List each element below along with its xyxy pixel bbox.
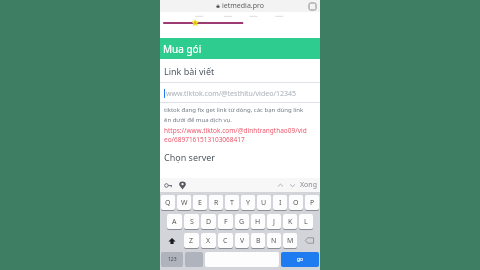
button[interactable]: A <box>167 214 182 229</box>
staticText: M <box>287 236 294 246</box>
staticText: W <box>181 198 188 208</box>
button[interactable]: F <box>218 214 233 229</box>
staticText: O <box>293 198 299 208</box>
staticText: S <box>190 217 194 227</box>
button[interactable]: H <box>251 214 265 229</box>
staticText: go <box>297 256 304 263</box>
button[interactable]: I <box>273 195 287 210</box>
button[interactable]: B <box>251 233 265 248</box>
staticText: ên dưới để mua dịch vụ. <box>164 116 232 124</box>
button[interactable]: Previous field <box>276 181 285 190</box>
button[interactable]: Next field <box>288 181 297 190</box>
staticText: Link bài viết <box>164 65 215 77</box>
staticText: tiktok đang fix get link từ dòng, các bạ… <box>164 106 317 114</box>
staticText: I <box>279 198 282 208</box>
staticText: https://www.tiktok.com/@dinhtrangthao09/… <box>164 126 307 135</box>
button[interactable]: P <box>305 195 319 210</box>
button[interactable]: S <box>184 214 199 229</box>
staticText: N <box>271 236 277 246</box>
staticText: 123 <box>168 256 177 263</box>
button[interactable]: Xong <box>300 180 317 190</box>
staticText: B <box>256 236 261 246</box>
button[interactable]: Shift <box>161 233 182 248</box>
button[interactable]: M <box>283 233 297 248</box>
staticText: F <box>224 217 228 227</box>
button[interactable]: go <box>281 252 319 267</box>
staticText: Z <box>189 236 194 246</box>
button[interactable]: D <box>201 214 216 229</box>
button[interactable]: Mua gói <box>160 38 320 59</box>
button[interactable]: J <box>267 214 281 229</box>
staticText: P <box>310 198 315 208</box>
button[interactable]: E <box>193 195 207 210</box>
staticText: Y <box>246 198 250 208</box>
button[interactable]: T <box>225 195 239 210</box>
button[interactable]: L <box>299 214 313 229</box>
staticText: T <box>230 198 234 208</box>
staticText: Q <box>165 198 171 208</box>
button[interactable]: V <box>235 233 249 248</box>
button[interactable]: W <box>177 195 191 210</box>
button[interactable]: www.tiktok.com/@testhitu/video/12345 <box>164 87 316 100</box>
staticText: H <box>255 217 261 227</box>
button[interactable]: Z <box>184 233 199 248</box>
button[interactable]: Passwords <box>164 181 173 190</box>
staticText: C <box>223 236 228 246</box>
button[interactable]: X <box>201 233 216 248</box>
button[interactable]: Location <box>178 181 187 190</box>
staticText: eo/6897161513103068417 <box>164 135 245 144</box>
staticText: Chọn server <box>164 151 216 163</box>
staticText: D <box>206 217 212 227</box>
button[interactable]: Backspace <box>299 233 319 248</box>
button[interactable]: C <box>218 233 233 248</box>
button[interactable]: Numbers <box>161 252 183 267</box>
button[interactable]: N <box>267 233 281 248</box>
staticText: A <box>172 217 177 227</box>
staticText: K <box>288 217 293 227</box>
button[interactable]: Share <box>309 3 316 10</box>
staticText: G <box>239 217 245 227</box>
staticText: ietmedia.pro <box>222 1 264 11</box>
button[interactable]: Q <box>161 195 175 210</box>
button[interactable]: U <box>257 195 271 210</box>
staticText: V <box>240 236 245 246</box>
staticText: U <box>261 198 267 208</box>
staticText: X <box>206 236 211 246</box>
button[interactable]: G <box>235 214 249 229</box>
staticText: J <box>273 217 275 227</box>
button[interactable]: K <box>283 214 297 229</box>
button[interactable]: Y <box>241 195 255 210</box>
staticText: R <box>214 198 219 208</box>
staticText: www.tiktok.com/@testhitu/video/12345 <box>166 89 297 99</box>
button[interactable]: O <box>289 195 303 210</box>
button[interactable]: R <box>209 195 223 210</box>
staticText: Xong <box>300 180 317 190</box>
staticText: L <box>304 217 308 227</box>
staticText: E <box>198 198 202 208</box>
staticText: Mua gói <box>163 42 202 56</box>
